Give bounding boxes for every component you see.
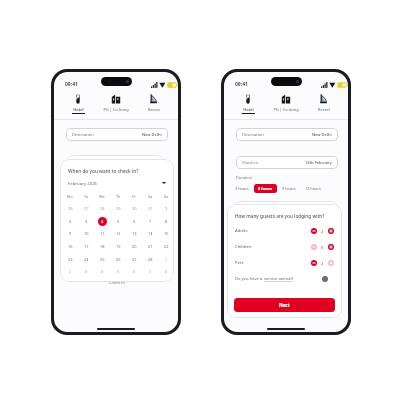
button[interactable]: 12 bbox=[114, 229, 123, 238]
staticText: 4 bbox=[101, 269, 104, 274]
staticText: Children bbox=[235, 244, 252, 250]
staticText: 24 bbox=[84, 257, 89, 262]
staticText: New Delhi bbox=[142, 132, 162, 137]
button[interactable]: 2 bbox=[66, 267, 75, 276]
button[interactable]: 3 bbox=[82, 267, 91, 276]
button[interactable]: 9 bbox=[66, 229, 75, 238]
button[interactable]: 4 bbox=[98, 267, 107, 276]
staticText: Destination bbox=[242, 132, 264, 137]
button[interactable]: 1 bbox=[162, 204, 171, 213]
staticText: Do you have a bbox=[235, 276, 264, 282]
button[interactable]: 9 hours bbox=[278, 184, 300, 193]
staticText: How many guests are you lodging with? bbox=[235, 213, 325, 219]
button[interactable]: Decrease bbox=[311, 244, 317, 250]
button[interactable]: Decrease bbox=[311, 228, 317, 234]
staticText: 5 bbox=[117, 269, 120, 274]
button[interactable]: 25 bbox=[98, 255, 107, 264]
button[interactable]: 12 hours bbox=[301, 184, 325, 193]
button[interactable]: Service animal toggle bbox=[322, 276, 328, 282]
button[interactable]: 5 bbox=[114, 267, 123, 276]
button[interactable]: 8 bbox=[162, 217, 171, 226]
staticText: 12 hours bbox=[305, 186, 321, 191]
button[interactable]: 4 bbox=[98, 217, 107, 226]
button[interactable]: 3 hours bbox=[231, 184, 253, 193]
staticText: 3 bbox=[85, 219, 88, 224]
button[interactable]: 3 bbox=[82, 217, 91, 226]
staticText: 13 bbox=[132, 231, 137, 236]
button[interactable]: 23 bbox=[66, 255, 75, 264]
staticText: 09:41 bbox=[65, 81, 78, 88]
button[interactable]: 20 bbox=[130, 242, 139, 251]
button[interactable]: February 2026 bbox=[68, 180, 166, 186]
button[interactable]: Hotel bbox=[59, 94, 97, 114]
button[interactable]: 27 bbox=[82, 204, 91, 213]
button[interactable]: Increase bbox=[328, 244, 334, 250]
button[interactable]: 13 bbox=[130, 229, 139, 238]
button[interactable]: 28 bbox=[98, 204, 107, 213]
button[interactable]: Increase bbox=[328, 228, 334, 234]
button[interactable]: 2 bbox=[66, 217, 75, 226]
staticText: 2 bbox=[69, 269, 72, 274]
staticText: 26 bbox=[116, 257, 121, 262]
button[interactable]: 15 bbox=[162, 229, 171, 238]
staticText: 6 bbox=[133, 269, 136, 274]
button[interactable]: 16 bbox=[66, 242, 75, 251]
staticText: 0 bbox=[321, 245, 324, 250]
button[interactable]: 30 bbox=[130, 204, 139, 213]
staticText: 7 bbox=[149, 269, 152, 274]
button[interactable]: 28 bbox=[146, 255, 155, 264]
staticText: Duration bbox=[236, 175, 253, 180]
button[interactable]: Resort bbox=[135, 94, 173, 113]
staticText: Pets bbox=[235, 260, 244, 266]
button[interactable]: 29 bbox=[114, 204, 123, 213]
button[interactable]: 7 bbox=[146, 217, 155, 226]
staticText: Mo bbox=[67, 194, 73, 199]
button[interactable]: Resort bbox=[305, 94, 343, 113]
staticText: Destination bbox=[72, 132, 94, 137]
button[interactable]: 21 bbox=[146, 242, 155, 251]
staticText: 12 bbox=[116, 231, 121, 236]
button[interactable]: 26 bbox=[66, 204, 75, 213]
button[interactable]: 7 bbox=[146, 267, 155, 276]
button[interactable]: 1 bbox=[162, 255, 171, 264]
button[interactable]: Increase bbox=[328, 260, 334, 266]
button[interactable]: 14 bbox=[146, 229, 155, 238]
staticText: 19 bbox=[116, 244, 121, 249]
staticText: 21 bbox=[148, 244, 153, 249]
staticText: 11 bbox=[100, 231, 105, 236]
button[interactable]: Next bbox=[234, 298, 335, 312]
staticText: 13th February bbox=[305, 160, 332, 165]
staticText: PG | Co-living bbox=[273, 107, 299, 112]
button[interactable]: Destination bbox=[236, 128, 338, 141]
button[interactable]: PG | Co-living bbox=[97, 94, 135, 113]
button[interactable]: 19 bbox=[114, 242, 123, 251]
button[interactable]: 31 bbox=[146, 204, 155, 213]
button[interactable]: Destination bbox=[66, 128, 168, 141]
staticText: Hotel bbox=[243, 107, 254, 112]
button[interactable]: PG | Co-living bbox=[267, 94, 305, 113]
button[interactable]: Check in bbox=[236, 156, 338, 169]
staticText: When do you want to check in? bbox=[68, 168, 139, 174]
staticText: 30 bbox=[132, 206, 137, 211]
button[interactable]: 5 bbox=[114, 217, 123, 226]
button[interactable]: 22 bbox=[162, 242, 171, 251]
button[interactable]: 26 bbox=[114, 255, 123, 264]
staticText: Sa bbox=[148, 194, 153, 199]
button[interactable]: 17 bbox=[82, 242, 91, 251]
button[interactable]: 18 bbox=[98, 242, 107, 251]
button[interactable]: 11 bbox=[98, 229, 107, 238]
staticText: 28 bbox=[148, 257, 153, 262]
staticText: 17 bbox=[84, 244, 89, 249]
staticText: 26 bbox=[68, 206, 73, 211]
button[interactable]: 6 bbox=[130, 217, 139, 226]
button[interactable]: 8 bbox=[162, 267, 171, 276]
staticText: 2 bbox=[69, 219, 72, 224]
button[interactable]: 10 bbox=[82, 229, 91, 238]
button[interactable]: 6 hours bbox=[254, 184, 277, 193]
button[interactable]: 27 bbox=[130, 255, 139, 264]
button[interactable]: Decrease bbox=[311, 260, 317, 266]
button[interactable]: Hotel bbox=[229, 94, 267, 114]
button[interactable]: 6 bbox=[130, 267, 139, 276]
button[interactable]: 24 bbox=[82, 255, 91, 264]
staticText: 25 bbox=[100, 257, 105, 262]
